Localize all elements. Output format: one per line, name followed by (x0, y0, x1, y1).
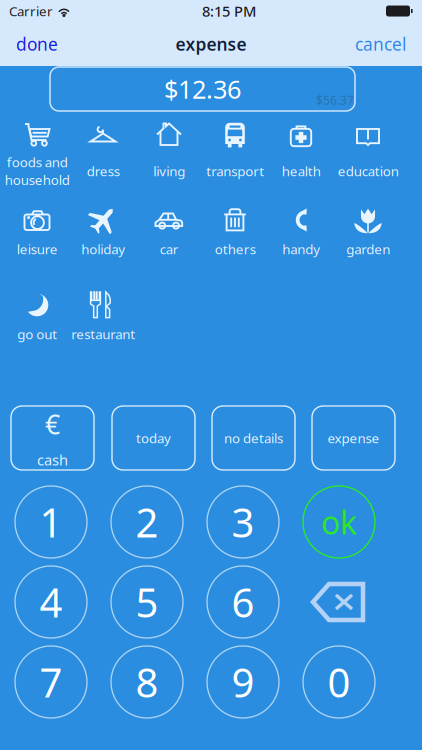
staticText: foods and household (4, 153, 69, 189)
button[interactable]: living (123, 115, 215, 187)
button[interactable]: 5 (111, 566, 183, 638)
button[interactable]: ok (303, 486, 375, 558)
button[interactable]: expense (312, 406, 395, 470)
staticText: 1 (39, 495, 62, 548)
staticText: 2 (135, 495, 158, 548)
staticText: education (337, 162, 398, 180)
button[interactable]: 9 (207, 646, 279, 718)
staticText: $56.37 (316, 92, 354, 108)
button[interactable]: others (189, 200, 281, 265)
staticText: garden (346, 240, 390, 258)
staticText: handy (282, 240, 320, 258)
staticText: restaurant (71, 325, 135, 343)
button[interactable]: 7 (15, 646, 87, 718)
button[interactable]: today (112, 406, 195, 470)
button[interactable]: car (123, 200, 215, 265)
staticText: Carrier (9, 2, 53, 20)
button[interactable]: foods and household (0, 115, 83, 187)
button[interactable]: garden (322, 200, 414, 265)
staticText: 5 (135, 575, 158, 628)
staticText: done (16, 32, 58, 55)
button[interactable]: € (11, 406, 94, 470)
staticText: 4 (39, 575, 62, 628)
staticText: expense (175, 32, 246, 55)
staticText: 8:15 PM (202, 1, 256, 21)
staticText: holiday (81, 240, 125, 258)
button[interactable]: transport (189, 115, 281, 187)
staticText: others (214, 240, 255, 258)
button[interactable]: done (12, 26, 62, 61)
staticText: expense (327, 429, 379, 447)
staticText: transport (206, 162, 264, 180)
staticText: 9 (231, 655, 254, 708)
button[interactable]: $12.36 (50, 67, 355, 111)
button[interactable]: go out (0, 285, 83, 350)
staticText: car (159, 240, 178, 258)
staticText: 0 (327, 655, 350, 708)
staticText: leisure (16, 240, 57, 258)
button[interactable]: restaurant (57, 285, 149, 350)
staticText: no details (224, 429, 283, 447)
staticText: € (45, 407, 60, 442)
button[interactable]: education (322, 115, 414, 187)
button[interactable]: 6 (207, 566, 279, 638)
button[interactable]: 0 (303, 646, 375, 718)
button[interactable]: 4 (15, 566, 87, 638)
button[interactable]: leisure (0, 200, 83, 265)
button[interactable]: 2 (111, 486, 183, 558)
staticText: living (153, 162, 185, 180)
staticText: 8 (135, 655, 158, 708)
button[interactable]: handy (255, 200, 347, 265)
staticText: 3 (231, 495, 254, 548)
staticText: dress (86, 162, 119, 180)
staticText: 6 (231, 575, 254, 628)
staticText: cancel (355, 32, 406, 55)
button[interactable]: cancel (351, 26, 410, 61)
staticText: today (136, 429, 171, 447)
staticText: ok (321, 501, 357, 543)
button[interactable]: 8 (111, 646, 183, 718)
staticText: $12.36 (164, 72, 241, 106)
button[interactable]: 3 (207, 486, 279, 558)
button[interactable]: health (255, 115, 347, 187)
staticText: go out (17, 325, 57, 343)
button[interactable]: holiday (57, 200, 149, 265)
button[interactable]: 1 (15, 486, 87, 558)
button[interactable]: no details (212, 406, 295, 470)
button[interactable]: Delete (303, 566, 375, 638)
button[interactable]: dress (57, 115, 149, 187)
staticText: health (281, 162, 320, 180)
staticText: cash (37, 450, 68, 469)
staticText: 7 (39, 655, 62, 708)
